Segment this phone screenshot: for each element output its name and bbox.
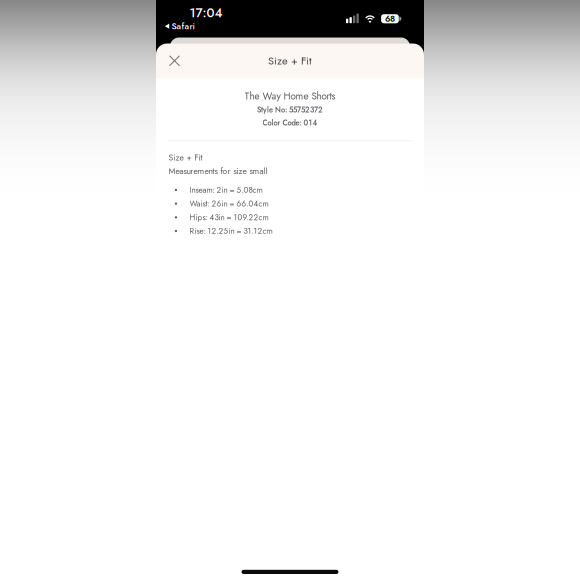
staticText: Size + Fit	[268, 53, 312, 69]
staticText: Inseam: 2in = 5.08cm	[190, 184, 263, 196]
staticText: Rise: 12.25in = 31.12cm	[190, 225, 273, 237]
staticText: Measurements for size small	[169, 165, 268, 177]
staticText: Safari	[171, 20, 194, 33]
staticText: Waist: 26in = 66.04cm	[190, 198, 269, 209]
button[interactable]: Safari	[161, 17, 198, 36]
staticText: 68	[385, 13, 395, 25]
staticText: The Way Home Shorts	[244, 89, 335, 103]
staticText: Hips: 43in = 109.22cm	[190, 211, 269, 223]
staticText: Style No: 55752372	[257, 104, 323, 115]
staticText: 17:04	[190, 4, 223, 22]
staticText: Color Code: 014	[262, 117, 317, 128]
staticText: Size + Fit	[169, 151, 203, 164]
button[interactable]: Close	[161, 44, 188, 77]
